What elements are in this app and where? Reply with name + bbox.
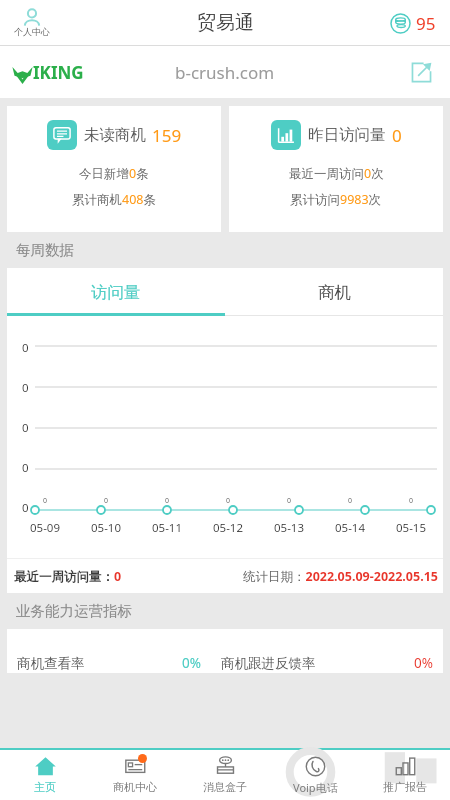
staticText: 推广报告 <box>383 780 427 794</box>
staticText: 最近一周访问0次 <box>289 165 384 182</box>
staticText: 商机 <box>318 282 351 303</box>
button[interactable]: Voip电话 <box>270 748 360 800</box>
staticText: 业务能力运营指标 <box>16 602 132 620</box>
staticText: 0 <box>392 124 402 147</box>
staticText: 05-12 <box>213 520 244 536</box>
staticText: 个人中心 <box>14 26 50 37</box>
button[interactable]: 推广报告 <box>360 748 450 800</box>
button[interactable]: Coins 95 <box>388 10 438 37</box>
staticText: 0 <box>22 340 29 356</box>
staticText: 0 <box>22 420 29 436</box>
staticText: 累计商机408条 <box>72 191 156 208</box>
staticText: 0 <box>43 496 48 506</box>
button[interactable]: Open website <box>406 57 436 87</box>
staticText: 每周数据 <box>16 241 74 259</box>
staticText: 0 <box>409 496 414 506</box>
staticText: IKING <box>33 61 84 84</box>
staticText: 昨日访问量 <box>308 125 386 145</box>
staticText: 159 <box>152 124 182 147</box>
staticText: 05-13 <box>274 520 305 536</box>
staticText: 05-10 <box>91 520 122 536</box>
staticText: 0 <box>22 500 29 516</box>
staticText: 消息盒子 <box>203 780 247 794</box>
staticText: 0 <box>22 460 29 476</box>
staticText: 贸易通 <box>197 11 254 35</box>
staticText: 95 <box>416 12 436 35</box>
staticText: b-crush.com <box>175 61 275 84</box>
staticText: 最近一周访问量：0 <box>14 568 122 585</box>
staticText: 未读商机 <box>84 125 146 145</box>
staticText: 0 <box>22 380 29 396</box>
staticText: 0% <box>414 654 433 672</box>
button[interactable]: 商机 <box>225 268 443 316</box>
staticText: 0 <box>104 496 109 506</box>
staticText: 05-11 <box>152 520 183 536</box>
staticText: Voip电话 <box>293 780 338 795</box>
staticText: 访问量 <box>91 282 141 303</box>
staticText: 累计访问9983次 <box>290 191 382 208</box>
staticText: 0 <box>226 496 231 506</box>
staticText: 05-15 <box>396 520 427 536</box>
button[interactable]: 访问量 <box>7 268 225 316</box>
button[interactable]: 未读商机 <box>7 106 221 232</box>
button[interactable]: 商机中心 <box>90 748 180 800</box>
staticText: 05-09 <box>30 520 61 536</box>
button[interactable]: 个人中心 <box>10 8 54 38</box>
staticText: 商机查看率 <box>17 655 85 672</box>
button[interactable]: 消息盒子 <box>180 748 270 800</box>
staticText: 主页 <box>34 780 56 794</box>
button[interactable]: 主页 <box>0 748 90 800</box>
staticText: 05-14 <box>335 520 366 536</box>
staticText: 今日新增0条 <box>79 165 149 182</box>
staticText: 0% <box>182 654 201 672</box>
staticText: 0 <box>165 496 170 506</box>
staticText: 0 <box>287 496 292 506</box>
staticText: 商机跟进反馈率 <box>221 655 316 672</box>
staticText: 统计日期：2022.05.09-2022.05.15 <box>243 568 438 585</box>
staticText: 商机中心 <box>113 780 157 794</box>
staticText: 0 <box>348 496 353 506</box>
button[interactable]: 昨日访问量 <box>229 106 443 232</box>
